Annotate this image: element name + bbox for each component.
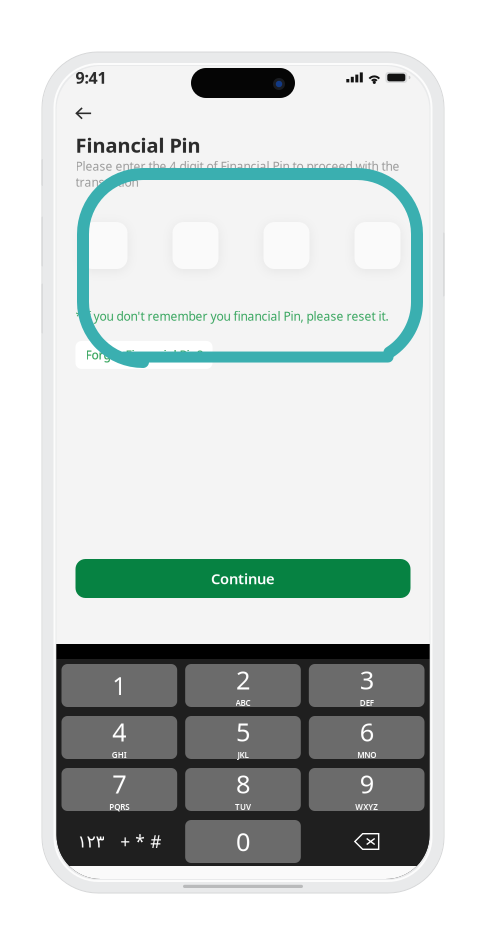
button[interactable]: 5 — [185, 716, 301, 759]
button[interactable]: 6 — [309, 716, 424, 759]
staticText: + * # — [120, 830, 161, 853]
staticText: GHI — [112, 749, 127, 760]
button[interactable]: Back — [75, 100, 106, 127]
button[interactable]: 8 — [185, 768, 301, 811]
staticText: *If you don't remember you financial Pin… — [75, 308, 388, 324]
staticText: 7 — [112, 767, 126, 800]
staticText: 2 — [236, 663, 250, 696]
button[interactable]: Continue — [75, 559, 410, 598]
button[interactable]: 4 — [61, 716, 177, 759]
button[interactable]: 0 — [185, 820, 301, 863]
button[interactable]: 9 — [309, 768, 424, 811]
staticText: TUV — [235, 801, 251, 812]
staticText: 3 — [360, 663, 374, 696]
staticText: 9:41 — [75, 67, 106, 88]
staticText: MNO — [357, 749, 376, 760]
staticText: Forgot Financial Pin? — [85, 347, 202, 363]
button[interactable]: 7 — [61, 768, 177, 811]
staticText: 6 — [360, 715, 374, 748]
button[interactable]: 2 — [185, 664, 301, 707]
staticText: Financial Pin — [75, 132, 200, 158]
staticText: ABC — [235, 697, 250, 708]
staticText: 5 — [236, 715, 250, 748]
staticText: WXYZ — [355, 801, 378, 812]
staticText: DEF — [360, 697, 374, 708]
staticText: Please enter the 4 digit of Financial Pi… — [75, 158, 399, 190]
staticText: 1 — [112, 669, 126, 702]
staticText: 0 — [236, 825, 250, 858]
staticText: 9 — [360, 767, 374, 800]
button[interactable]: Delete — [309, 820, 424, 863]
staticText: JKL — [237, 749, 248, 760]
button[interactable]: 1 — [61, 664, 177, 707]
button[interactable]: Forgot Financial Pin? — [75, 341, 212, 369]
button[interactable]: 3 — [309, 664, 424, 707]
staticText: PQRS — [109, 801, 129, 812]
staticText: ١٢٣ — [77, 832, 104, 851]
staticText: Continue — [211, 569, 275, 588]
staticText: 4 — [112, 715, 126, 748]
button[interactable]: Alternate characters — [61, 820, 177, 863]
staticText: 8 — [236, 767, 250, 800]
